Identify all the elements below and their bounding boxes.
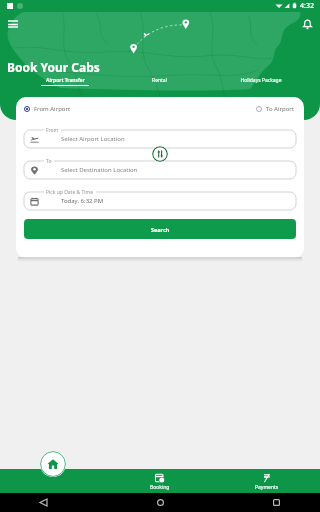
staticText: From Airport [34, 105, 71, 113]
staticText: Search [151, 226, 170, 233]
staticText: To [46, 158, 52, 165]
button[interactable]: Airport Transfer [35, 76, 95, 87]
button[interactable]: To Airport [253, 103, 297, 115]
staticText: To Airport [266, 105, 294, 113]
button[interactable]: Notifications [299, 16, 315, 32]
staticText: Pick up Date & Time [46, 189, 94, 196]
staticText: Booking [150, 484, 170, 491]
staticText: 4:32 [300, 1, 314, 11]
staticText: Payments [255, 484, 279, 491]
staticText: Airport Transfer [46, 77, 85, 84]
button[interactable]: Swap locations [152, 146, 168, 162]
staticText: Select Airport Location [61, 135, 125, 143]
staticText: Select Destination Location [61, 166, 138, 174]
staticText: From [46, 127, 59, 134]
button[interactable]: From Airport [21, 103, 74, 115]
button[interactable]: Home [40, 451, 66, 477]
button[interactable]: Booking [106, 469, 213, 491]
staticText: Holidays Package [240, 77, 282, 84]
button[interactable]: Search [24, 219, 296, 239]
button[interactable]: Holidays Package [230, 76, 292, 86]
button[interactable] [24, 161, 296, 179]
staticText: Today, 6:32 PM [61, 197, 104, 205]
button[interactable]: Rental [129, 76, 189, 86]
staticText: Rental [152, 77, 167, 84]
button[interactable] [24, 192, 296, 210]
staticText: Book Your Cabs [7, 59, 100, 75]
button[interactable]: Payments [213, 469, 320, 491]
button[interactable]: Menu [5, 16, 21, 32]
button[interactable] [24, 130, 296, 148]
